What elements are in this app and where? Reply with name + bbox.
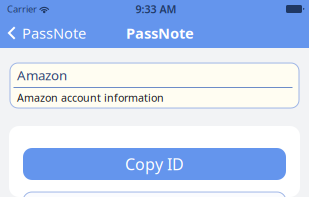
staticText: 9:33 AM xyxy=(135,2,176,16)
staticText: Amazon xyxy=(17,66,67,84)
staticText: Copy ID xyxy=(125,153,184,175)
button[interactable]: PassNote xyxy=(0,18,94,48)
staticText: Amazon account information xyxy=(17,90,164,105)
staticText: PassNote xyxy=(22,23,86,43)
staticText: PassNote xyxy=(126,23,194,43)
staticText: Carrier xyxy=(7,3,37,15)
button[interactable]: Amazon xyxy=(10,63,299,108)
button[interactable]: Copy ID xyxy=(23,148,286,180)
button[interactable]: Copy password xyxy=(23,192,286,197)
